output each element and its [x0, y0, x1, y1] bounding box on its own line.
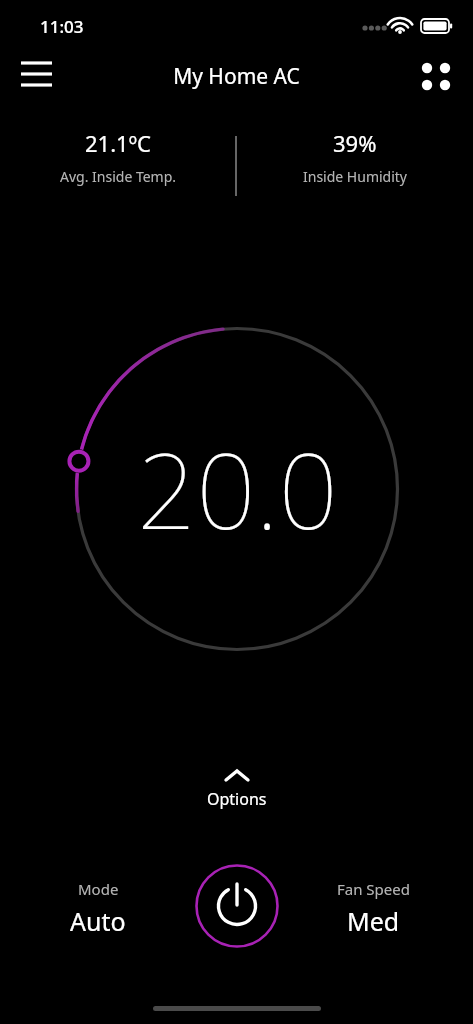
staticText: My Home AC: [0, 62, 473, 91]
staticText: Auto: [70, 904, 126, 938]
staticText: Inside Humidity: [303, 167, 408, 186]
button[interactable]: 20.0: [58, 310, 416, 668]
button[interactable]: Mode: [28, 879, 168, 938]
staticText: 11:03: [40, 15, 84, 38]
button[interactable]: More options: [410, 52, 462, 100]
button[interactable]: Power: [195, 864, 279, 948]
button[interactable]: Options: [167, 768, 307, 810]
button[interactable]: 21.1ºC: [18, 128, 218, 186]
button[interactable]: Menu: [8, 50, 66, 100]
button[interactable]: 39%: [255, 128, 455, 186]
staticText: Med: [347, 904, 400, 938]
staticText: Options: [207, 788, 267, 810]
staticText: 39%: [333, 128, 377, 158]
staticText: 20.0: [137, 418, 338, 560]
staticText: 21.1ºC: [85, 128, 151, 158]
staticText: Mode: [78, 879, 119, 899]
staticText: Avg. Inside Temp.: [60, 167, 177, 186]
button[interactable]: Fan Speed: [303, 879, 443, 938]
staticText: Fan Speed: [337, 879, 410, 899]
